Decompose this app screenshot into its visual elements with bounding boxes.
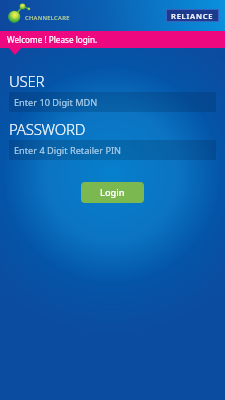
staticText: Welcome ! Please login. (7, 34, 98, 45)
staticText: RELIANCE (171, 11, 214, 21)
staticText: Login (100, 186, 125, 199)
button[interactable]: Welcome ! Please login. (0, 31, 225, 48)
staticText: CHANNELCARE (25, 14, 70, 22)
button[interactable]: Enter 10 Digit MDN (9, 92, 216, 112)
staticText: Enter 4 Digit Retailer PIN (14, 144, 122, 157)
staticText: PASSWORD (9, 119, 86, 139)
staticText: USER (9, 71, 45, 91)
staticText: Enter 10 Digit MDN (14, 96, 98, 109)
button[interactable]: Reliance (166, 9, 219, 22)
button[interactable]: Login (81, 182, 144, 203)
button[interactable]: Enter 4 Digit Retailer PIN (9, 140, 216, 160)
